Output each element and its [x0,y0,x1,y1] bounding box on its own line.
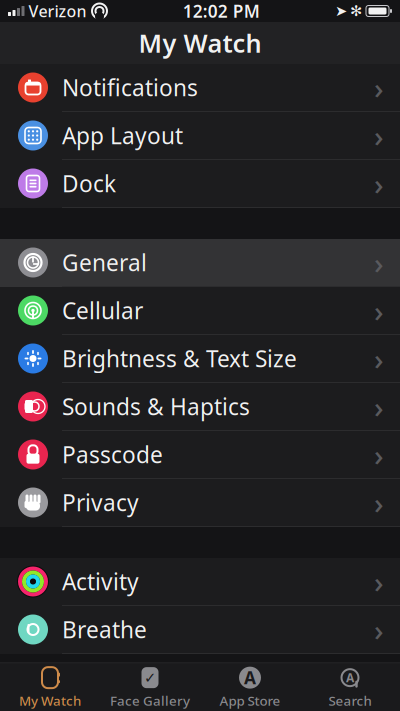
button[interactable]: A [300,663,400,711]
staticText: ✓ [144,669,156,686]
staticText: My Watch [19,692,81,709]
button[interactable]: Notifications [0,64,400,112]
staticText: Brightness & Text Size [62,343,297,373]
staticText: App Store [219,692,280,709]
staticText: Breathe [62,614,147,644]
button[interactable]: General [0,239,400,287]
staticText: Passcode [62,439,163,469]
staticText: Face Gallery [110,692,190,709]
staticText: › [374,68,384,107]
staticText: › [374,291,384,330]
staticText: › [374,243,384,282]
staticText: My Watch [138,26,261,60]
staticText: Verizon [28,0,86,22]
staticText: General [62,247,147,277]
staticText: › [374,116,384,155]
staticText: ➤ [335,3,347,19]
staticText: 12:02 PM [183,0,260,22]
staticText: › [374,339,384,378]
staticText: › [374,435,384,474]
button[interactable]: Passcode [0,431,400,479]
staticText: › [374,483,384,522]
staticText: A [244,666,256,689]
button[interactable]: Brightness & Text Size [0,335,400,383]
button[interactable]: A [200,663,300,711]
button[interactable]: My Watch [0,663,100,711]
staticText: › [374,387,384,426]
staticText: › [374,562,384,601]
button[interactable]: Breathe [0,606,400,654]
staticText: ✻ [350,3,362,19]
staticText: Activity [62,566,139,596]
staticText: Notifications [62,72,198,102]
button[interactable]: Sounds & Haptics [0,383,400,431]
staticText: Privacy [62,487,139,517]
staticText: Dock [62,168,116,198]
button[interactable]: Activity [0,558,400,606]
staticText: Cellular [62,295,143,325]
button[interactable]: App Layout [0,112,400,160]
button[interactable]: Dock [0,160,400,208]
staticText: › [374,610,384,649]
button[interactable]: Privacy [0,479,400,527]
staticText: A [346,670,354,686]
staticText: App Layout [62,120,183,150]
button[interactable]: Cellular [0,287,400,335]
staticText: Search [328,692,371,709]
staticText: › [374,164,384,203]
staticText: Sounds & Haptics [62,391,250,421]
button[interactable]: ✓ [100,663,200,711]
